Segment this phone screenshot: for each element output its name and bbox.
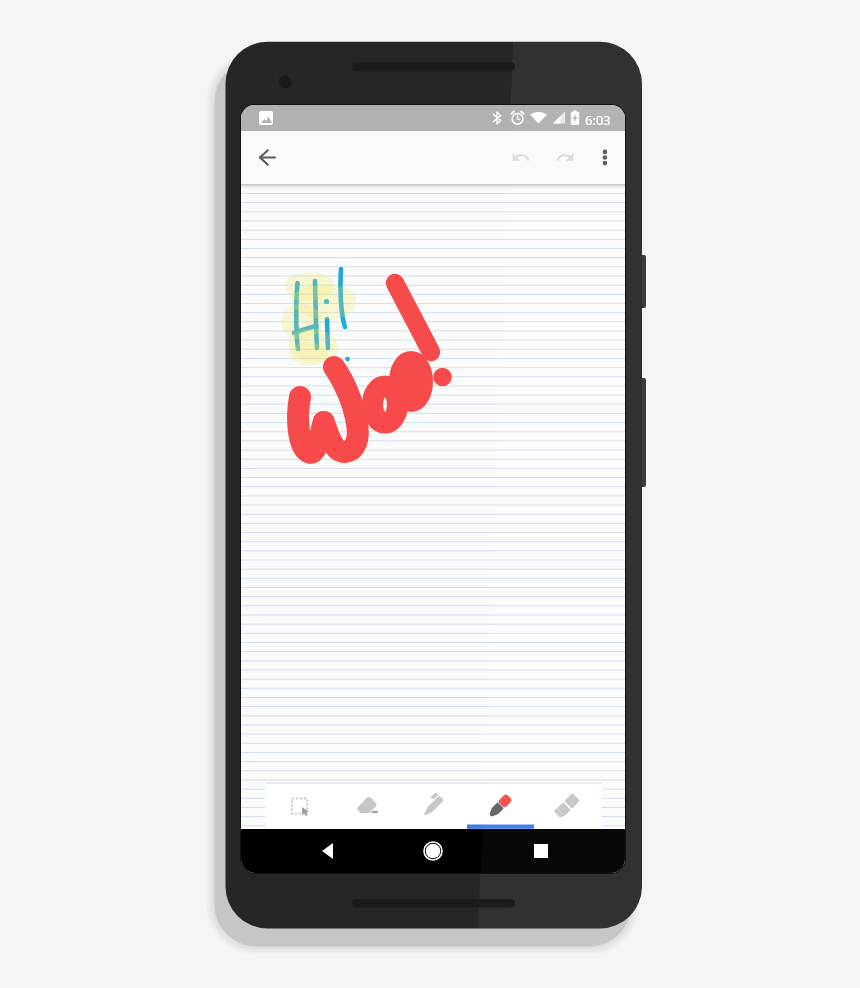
button[interactable]: Undo (501, 137, 541, 177)
staticText: 6:03 (585, 111, 611, 129)
button[interactable]: Eraser (333, 784, 400, 828)
button[interactable]: More options (586, 137, 626, 177)
button[interactable]: Marker (467, 784, 534, 828)
button[interactable]: Select (266, 784, 333, 828)
button[interactable]: Home (411, 829, 455, 873)
button[interactable]: Back (305, 829, 349, 873)
button[interactable]: Recent apps (518, 829, 562, 873)
button[interactable]: Redo (545, 137, 585, 177)
button[interactable]: Pen (400, 784, 467, 828)
button[interactable]: Back (249, 137, 289, 177)
button[interactable]: Highlighter (534, 784, 601, 828)
